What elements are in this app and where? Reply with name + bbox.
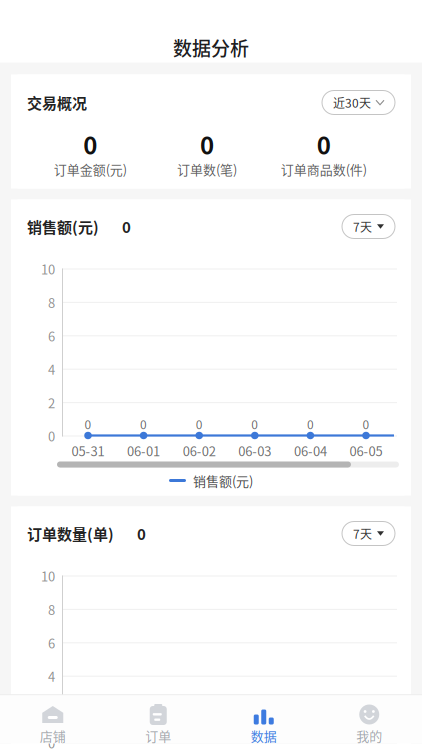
button[interactable]: 7天 xyxy=(342,214,395,238)
staticText: 6 xyxy=(48,633,55,652)
staticText: 订单商品数(件) xyxy=(281,160,367,178)
staticText: 4 xyxy=(48,360,55,378)
staticText: 订单数(笔) xyxy=(177,160,237,178)
staticText: 0 xyxy=(84,415,91,433)
staticText: 数据 xyxy=(251,726,277,745)
staticText: 0 xyxy=(122,216,131,237)
button[interactable]: 数据 xyxy=(211,694,316,743)
staticText: 06-04 xyxy=(294,441,327,460)
staticText: 0 xyxy=(307,415,314,433)
staticText: 0 xyxy=(317,127,331,161)
staticText: 0 xyxy=(251,415,258,433)
staticText: 2 xyxy=(48,700,55,719)
staticText: 06-03 xyxy=(238,441,271,460)
staticText: 0 xyxy=(83,127,97,161)
staticText: 数据分析 xyxy=(173,34,249,61)
staticText: 7天 xyxy=(353,525,372,542)
staticText: 交易概况 xyxy=(27,92,87,113)
staticText: 店铺 xyxy=(40,726,66,745)
button[interactable]: 订单 xyxy=(105,694,211,743)
staticText: 销售额(元) xyxy=(193,471,253,490)
staticText: 06-05 xyxy=(349,441,382,460)
button[interactable]: 我的 xyxy=(316,694,422,743)
button[interactable]: 7天 xyxy=(342,521,395,545)
staticText: 4 xyxy=(48,667,55,685)
staticText: 订单数量(单) xyxy=(27,523,114,544)
staticText: 0 xyxy=(137,523,146,544)
staticText: 0 xyxy=(48,426,55,445)
staticText: 销售额(元) xyxy=(27,216,99,237)
staticText: 10 xyxy=(41,566,55,585)
staticText: 2 xyxy=(48,393,55,412)
staticText: 订单金额(元) xyxy=(54,160,127,178)
staticText: 7天 xyxy=(353,218,372,235)
staticText: 我的 xyxy=(356,726,382,745)
button[interactable]: 近30天 xyxy=(322,90,395,114)
staticText: 06-02 xyxy=(183,441,216,460)
staticText: 05-31 xyxy=(71,441,104,460)
staticText: 0 xyxy=(200,127,214,161)
staticText: 0 xyxy=(140,415,147,433)
button[interactable]: 店铺 xyxy=(0,694,105,743)
staticText: 订单 xyxy=(145,726,171,745)
staticText: 0 xyxy=(362,415,369,433)
staticText: 6 xyxy=(48,326,55,345)
staticText: 近30天 xyxy=(333,94,371,111)
staticText: 8 xyxy=(48,293,55,312)
staticText: 8 xyxy=(48,600,55,619)
staticText: 0 xyxy=(48,733,55,750)
staticText: 06-01 xyxy=(127,441,160,460)
staticText: 10 xyxy=(41,259,55,278)
staticText: 0 xyxy=(196,415,203,433)
